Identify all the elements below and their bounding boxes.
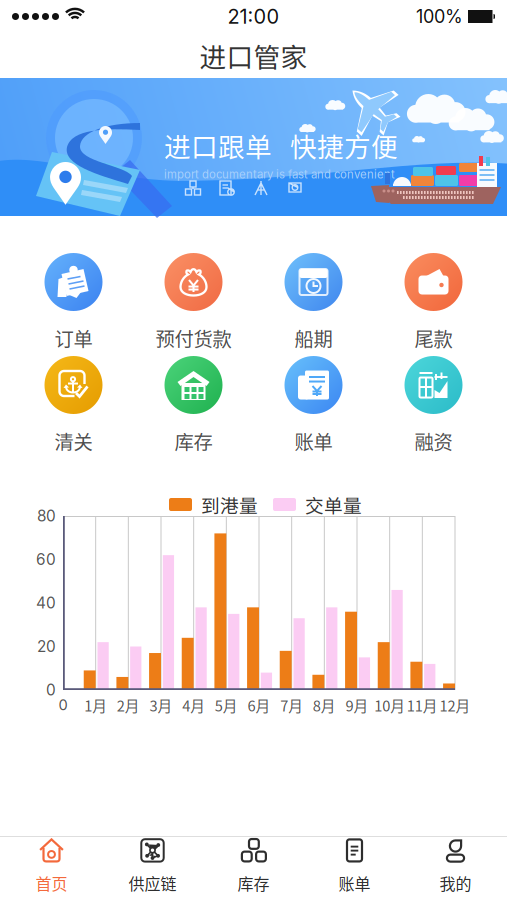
staticText: 清关 — [54, 427, 92, 455]
staticText: 11月 — [407, 694, 438, 716]
staticText: 我的 — [439, 871, 471, 895]
button[interactable]: 库存 — [133, 356, 253, 459]
staticText: 6月 — [247, 694, 270, 716]
button[interactable]: 首页 — [1, 836, 102, 896]
staticText: 首页 — [35, 871, 67, 895]
staticText: 进口跟单 快捷方便 — [164, 126, 398, 165]
staticText: 融资 — [414, 427, 452, 455]
staticText: 账单 — [294, 427, 332, 455]
staticText: 20 — [37, 637, 56, 656]
staticText: 1月 — [84, 694, 107, 716]
staticText: 40 — [36, 594, 56, 612]
staticText: 库存 — [174, 427, 212, 455]
button[interactable]: 供应链 — [102, 836, 203, 896]
staticText: 到港量 — [201, 491, 258, 518]
button[interactable]: 库存 — [203, 836, 304, 896]
staticText: 进口管家 — [199, 36, 307, 75]
staticText: 0 — [46, 681, 56, 699]
staticText: 4月 — [182, 694, 205, 716]
button[interactable]: 进口管家 — [0, 33, 507, 78]
staticText: 100% — [416, 6, 463, 27]
staticText: 80 — [37, 507, 56, 525]
button[interactable]: 船期 — [253, 253, 373, 356]
staticText: 订单 — [54, 324, 92, 352]
staticText: 7月 — [280, 694, 303, 716]
staticText: 库存 — [237, 871, 269, 895]
button[interactable]: 我的 — [405, 836, 506, 896]
staticText: 尾款 — [414, 324, 452, 352]
staticText: 60 — [36, 550, 56, 569]
staticText: 3月 — [149, 694, 172, 716]
staticText: 21:00 — [227, 4, 279, 29]
staticText: 供应链 — [128, 871, 176, 895]
staticText: import documentary is fast and convenien… — [164, 168, 395, 181]
staticText: 0 — [58, 696, 67, 714]
staticText: 9月 — [345, 694, 368, 716]
staticText: 5月 — [215, 694, 238, 716]
button[interactable]: 尾款 — [373, 253, 493, 356]
staticText: 船期 — [294, 324, 332, 352]
button[interactable]: 融资 — [373, 356, 493, 459]
staticText: 预付货款 — [155, 324, 231, 352]
button[interactable]: 清关 — [13, 356, 133, 459]
button[interactable]: 预付货款 — [133, 253, 253, 356]
button[interactable]: 账单 — [253, 356, 373, 459]
staticText: 10月 — [374, 694, 405, 716]
staticText: 交单量 — [305, 491, 362, 518]
staticText: 账单 — [338, 871, 370, 895]
staticText: 8月 — [313, 694, 336, 716]
staticText: 2月 — [117, 694, 140, 716]
button[interactable]: 订单 — [13, 253, 133, 356]
staticText: 12月 — [439, 694, 470, 716]
button[interactable]: 账单 — [304, 836, 405, 896]
